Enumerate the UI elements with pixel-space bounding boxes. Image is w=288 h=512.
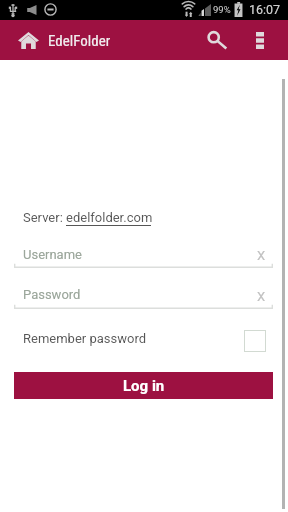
button[interactable]: Remember password [14,326,273,356]
staticText: 99% [213,4,231,15]
staticText: Log in [123,377,165,395]
button[interactable]: Clear Password [249,284,273,308]
button[interactable]: Search [200,20,234,60]
button[interactable]: Clear Username [249,243,273,267]
button[interactable]: Log in [14,372,273,399]
staticText: X [257,289,266,304]
staticText: X [257,248,266,263]
button[interactable]: Home [8,20,148,60]
staticText: Remember password [23,331,147,346]
button[interactable]: Username [14,242,273,268]
button[interactable]: Server: edelfolder.com [23,210,153,225]
button[interactable]: More options [244,20,276,60]
staticText: Server: edelfolder.com [23,210,153,225]
button[interactable]: Password [14,283,273,309]
staticText: Password [23,287,81,302]
other: Home [18,32,39,49]
staticText: Username [23,247,82,262]
staticText: 16:07 [249,2,281,17]
staticText: EdelFolder [48,32,111,50]
